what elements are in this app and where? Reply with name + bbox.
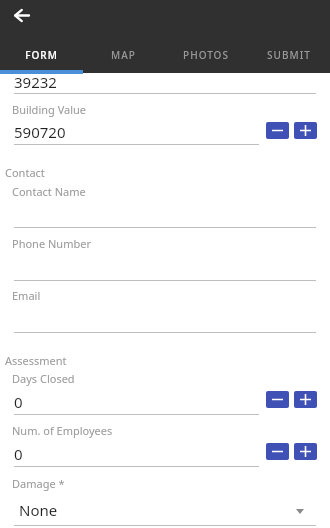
button[interactable]: Increase — [294, 391, 317, 408]
button[interactable]: Decrease — [266, 122, 289, 139]
button[interactable]: Damage, None — [0, 472, 330, 527]
staticText: FORM — [25, 48, 58, 62]
staticText: 0 — [14, 392, 23, 412]
button[interactable]: Navigate back — [7, 1, 36, 30]
staticText: Contact — [5, 165, 45, 180]
button[interactable]: Num. of Employees — [0, 418, 259, 468]
button[interactable]: Open Damage dropdown — [290, 494, 310, 514]
staticText: Assessment — [5, 353, 67, 368]
button[interactable]: Decrease — [266, 391, 289, 408]
button[interactable]: Increase — [294, 122, 317, 139]
button[interactable]: Increase — [294, 443, 317, 460]
staticText: None — [19, 500, 58, 520]
staticText: Phone Number — [12, 236, 91, 251]
button[interactable]: Building Value — [0, 97, 259, 146]
button[interactable]: Days Closed — [0, 366, 259, 416]
button[interactable]: Email — [0, 284, 330, 334]
staticText: MAP — [111, 48, 136, 62]
staticText: Days Closed — [12, 371, 75, 386]
staticText: Email — [12, 288, 41, 303]
button[interactable]: Decrease — [266, 443, 289, 460]
staticText: Damage * — [12, 476, 65, 491]
button[interactable]: PHOTOS — [164, 42, 247, 68]
button[interactable]: 39232 — [0, 74, 330, 95]
button[interactable]: Contact Name — [0, 180, 330, 229]
staticText: Contact Name — [12, 184, 86, 199]
button[interactable]: FORM — [0, 42, 82, 68]
staticText: 590720 — [14, 122, 66, 142]
staticText: Building Value — [12, 102, 87, 117]
staticText: 39232 — [14, 72, 57, 92]
staticText: PHOTOS — [183, 48, 229, 62]
staticText: SUBMIT — [267, 48, 311, 62]
button[interactable]: MAP — [82, 42, 164, 68]
staticText: Num. of Employees — [12, 423, 113, 438]
button[interactable]: Phone Number — [0, 232, 330, 282]
button[interactable]: SUBMIT — [247, 42, 330, 68]
staticText: 0 — [14, 444, 23, 464]
